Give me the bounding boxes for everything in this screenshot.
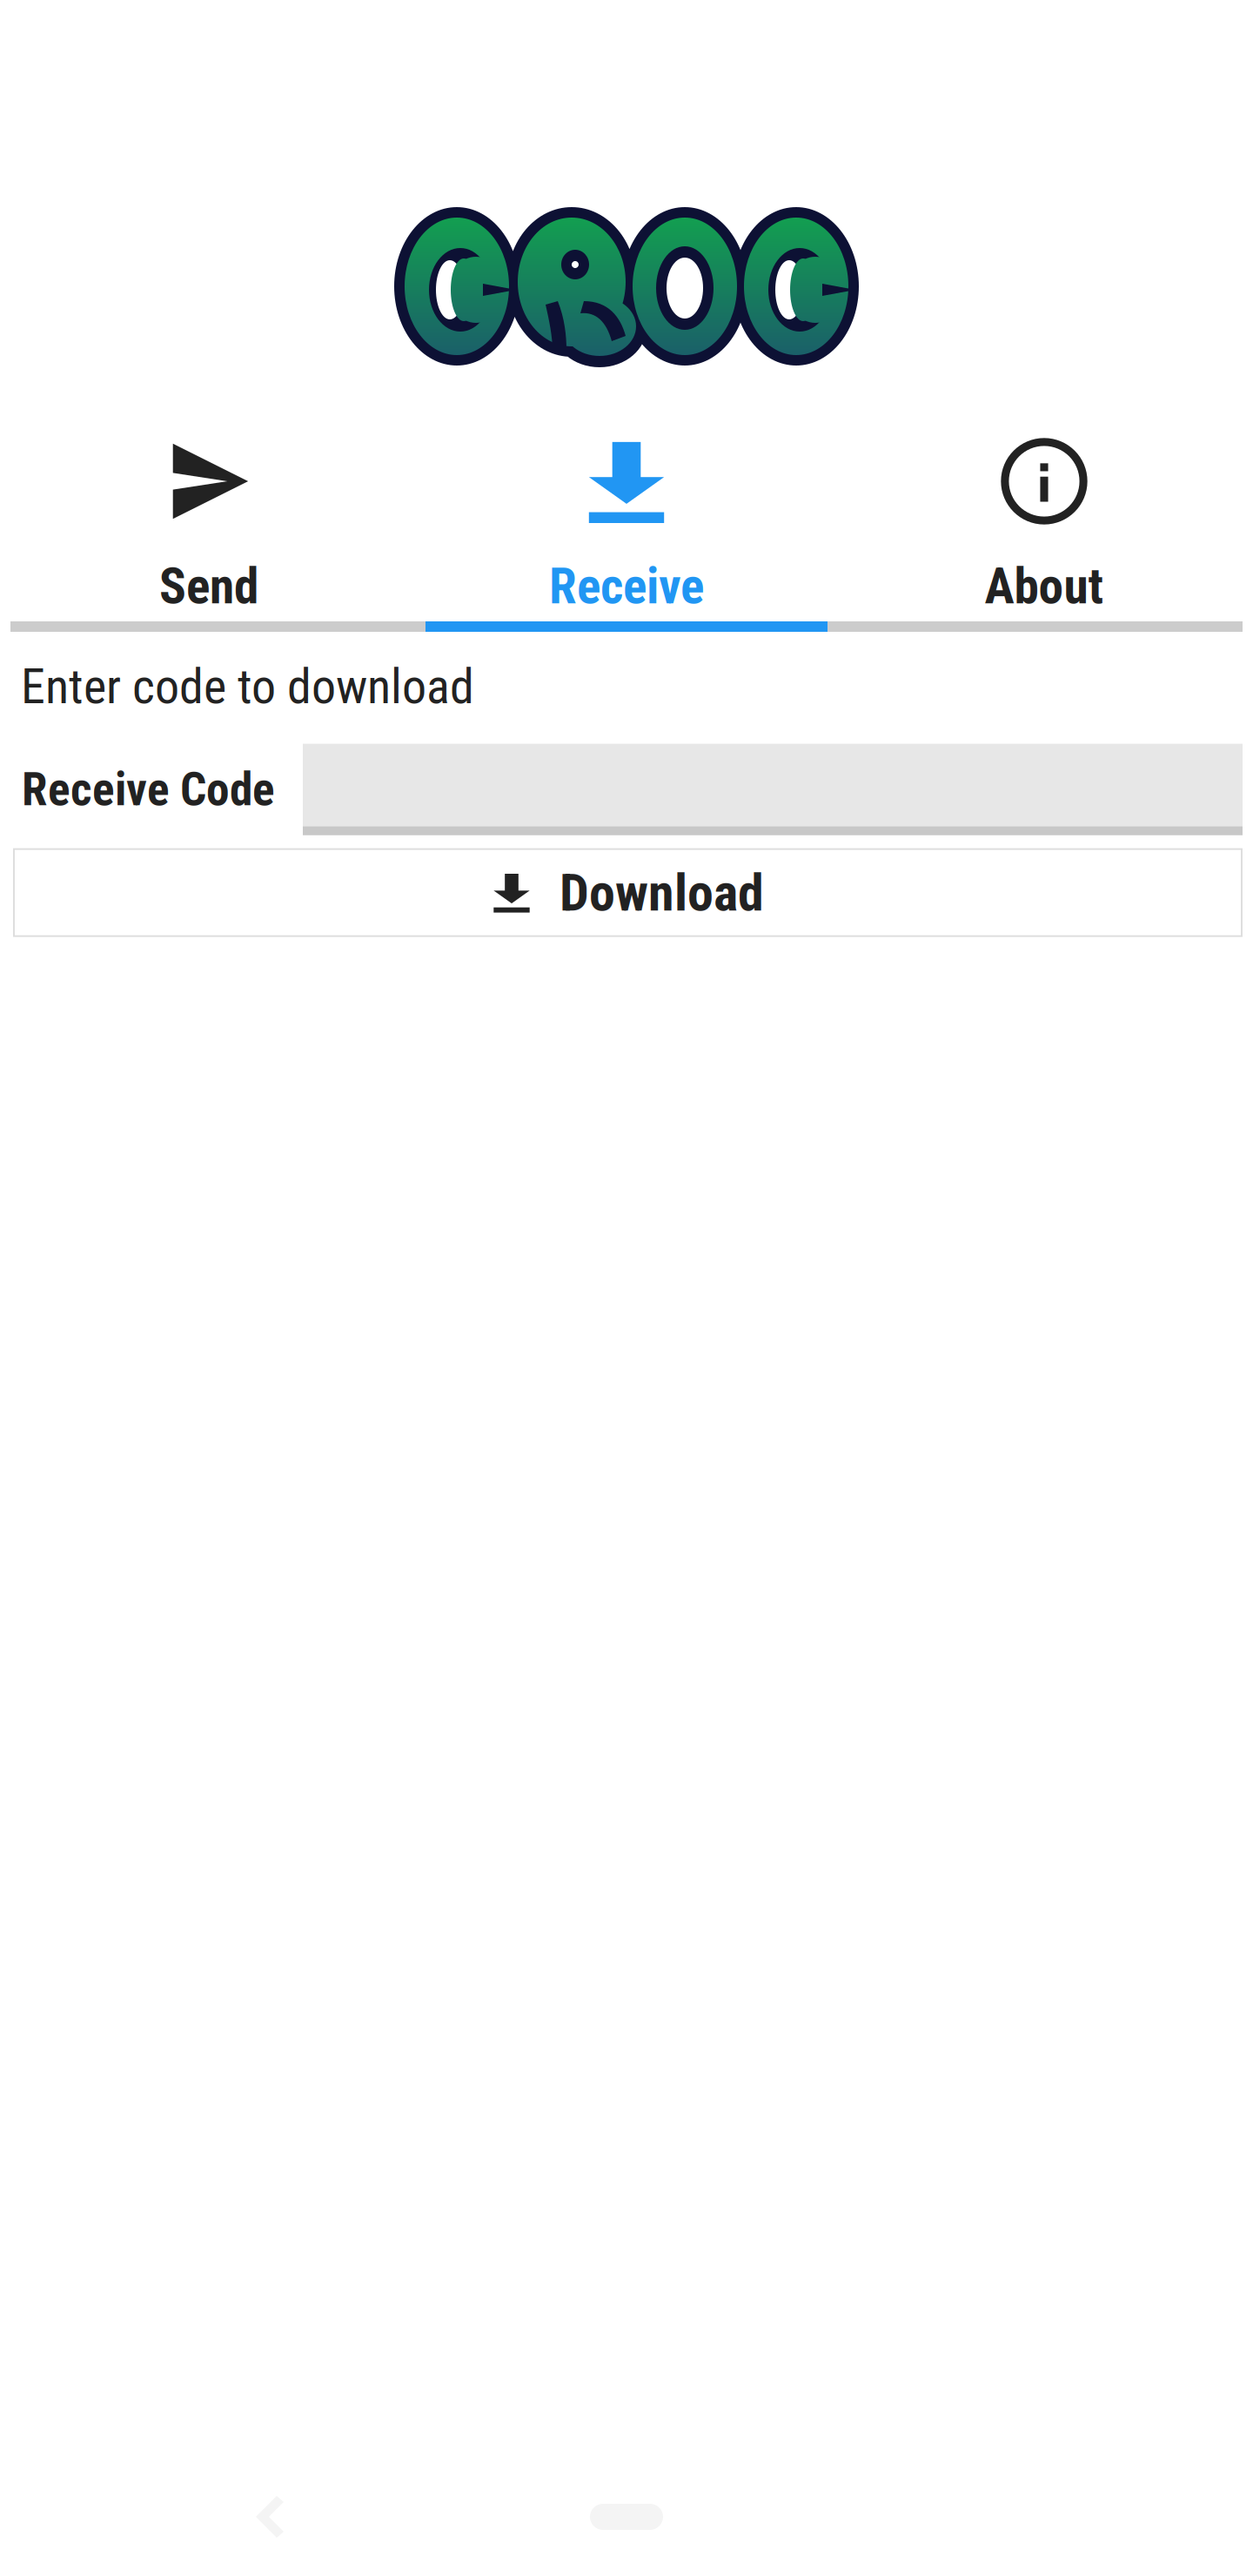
staticText: Send (159, 557, 258, 615)
button[interactable]: Download (14, 849, 1242, 936)
staticText: Receive Code (22, 762, 275, 817)
button[interactable]: Receive code field (303, 744, 1243, 835)
staticText: About (985, 557, 1104, 615)
staticText: Receive (549, 557, 704, 615)
staticText: Download (559, 862, 764, 923)
button[interactable]: About (835, 439, 1253, 615)
button[interactable]: Send (0, 439, 418, 615)
staticText: Enter code to download (21, 658, 474, 715)
button[interactable]: Receive (418, 439, 835, 615)
